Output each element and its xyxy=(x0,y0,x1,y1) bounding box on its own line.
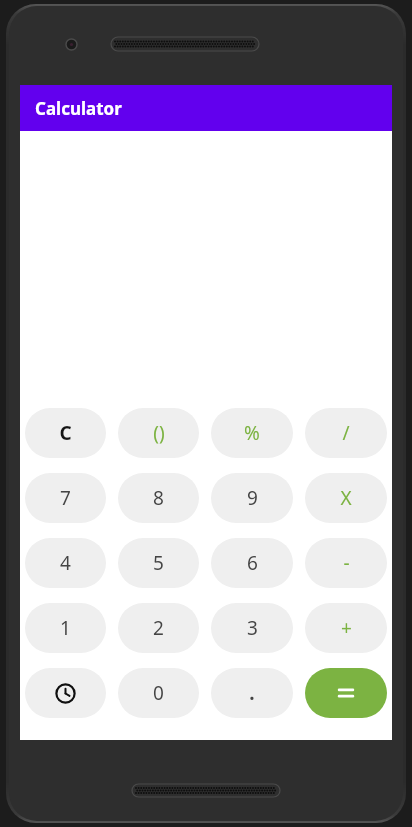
button[interactable]: 0 xyxy=(118,668,199,718)
staticText: 4 xyxy=(60,550,71,576)
button[interactable]: 1 xyxy=(25,603,106,653)
staticText: 0 xyxy=(153,680,164,706)
button[interactable]: 2 xyxy=(118,603,199,653)
staticText: % xyxy=(244,420,260,446)
staticText: 6 xyxy=(247,550,258,576)
button[interactable]: Equals xyxy=(305,668,387,718)
staticText: 7 xyxy=(60,485,71,511)
staticText: () xyxy=(153,420,165,446)
staticText: Calculator xyxy=(35,97,122,120)
button[interactable]: 7 xyxy=(25,473,106,523)
button[interactable]: () xyxy=(118,408,199,458)
button[interactable]: - xyxy=(305,538,387,588)
staticText: . xyxy=(249,680,255,706)
staticText: - xyxy=(343,550,350,576)
staticText: C xyxy=(59,420,72,446)
button[interactable]: % xyxy=(211,408,293,458)
button[interactable]: / xyxy=(305,408,387,458)
button[interactable]: History xyxy=(25,668,106,718)
staticText: / xyxy=(342,420,350,446)
staticText: 1 xyxy=(60,615,71,641)
staticText: X xyxy=(340,485,352,511)
button[interactable]: 6 xyxy=(211,538,293,588)
staticText: 5 xyxy=(153,550,164,576)
button[interactable]: 4 xyxy=(25,538,106,588)
button[interactable]: X xyxy=(305,473,387,523)
button[interactable]: 3 xyxy=(211,603,293,653)
staticText: 8 xyxy=(153,485,164,511)
staticText: 3 xyxy=(247,615,258,641)
button[interactable]: 9 xyxy=(211,473,293,523)
staticText: 2 xyxy=(153,615,164,641)
button[interactable]: + xyxy=(305,603,387,653)
button[interactable]: . xyxy=(211,668,293,718)
staticText: + xyxy=(341,615,352,641)
button[interactable]: C xyxy=(25,408,106,458)
staticText: 9 xyxy=(247,485,258,511)
button[interactable]: 5 xyxy=(118,538,199,588)
button[interactable]: 8 xyxy=(118,473,199,523)
